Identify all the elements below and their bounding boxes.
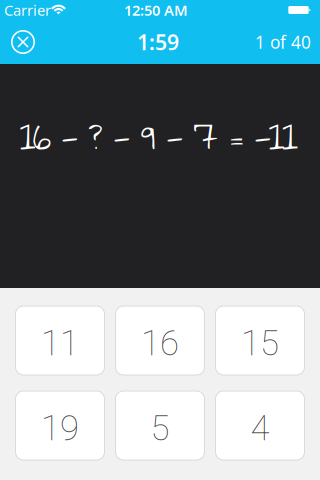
staticText: Carrier: [4, 0, 51, 20]
button[interactable]: 16: [115, 306, 204, 375]
staticText: 11: [41, 323, 79, 364]
button[interactable]: 4: [215, 391, 304, 460]
button[interactable]: [11, 30, 35, 54]
button[interactable]: 11: [15, 306, 104, 375]
button[interactable]: 5: [115, 391, 204, 460]
staticText: 15: [241, 323, 279, 364]
staticText: 1 of 40: [255, 30, 311, 53]
staticText: 12:50 AM: [124, 0, 188, 20]
button[interactable]: 19: [15, 391, 104, 460]
staticText: 16 - ? - 9 - 7 = -11: [19, 105, 298, 167]
staticText: 19: [41, 408, 79, 449]
button[interactable]: 15: [215, 306, 304, 375]
staticText: 5: [150, 408, 169, 449]
staticText: 4: [250, 408, 269, 449]
staticText: 1:59: [137, 28, 179, 56]
button[interactable]: 1 of 40: [255, 30, 311, 53]
staticText: 16: [141, 323, 179, 364]
